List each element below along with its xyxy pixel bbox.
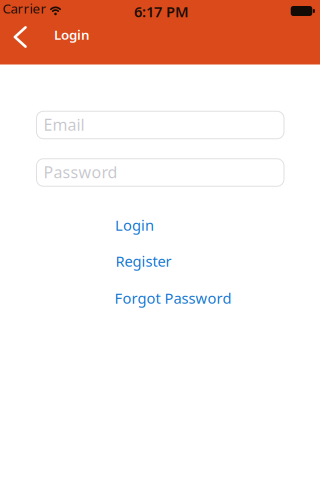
staticText: Password: [43, 161, 117, 183]
button[interactable]: Register: [115, 251, 171, 271]
staticText: Forgot Password: [114, 288, 231, 308]
button[interactable]: Email text field: [36, 111, 284, 139]
staticText: Email: [43, 114, 84, 135]
staticText: Login: [54, 26, 90, 43]
staticText: 6:17 PM: [134, 2, 189, 21]
button[interactable]: Forgot Password: [114, 288, 231, 308]
button[interactable]: Password text field: [36, 159, 284, 186]
staticText: Login: [115, 215, 154, 235]
staticText: Register: [115, 251, 171, 271]
button[interactable]: Back: [13, 26, 90, 47]
button[interactable]: Login: [115, 215, 154, 235]
staticText: Carrier: [2, 0, 46, 17]
